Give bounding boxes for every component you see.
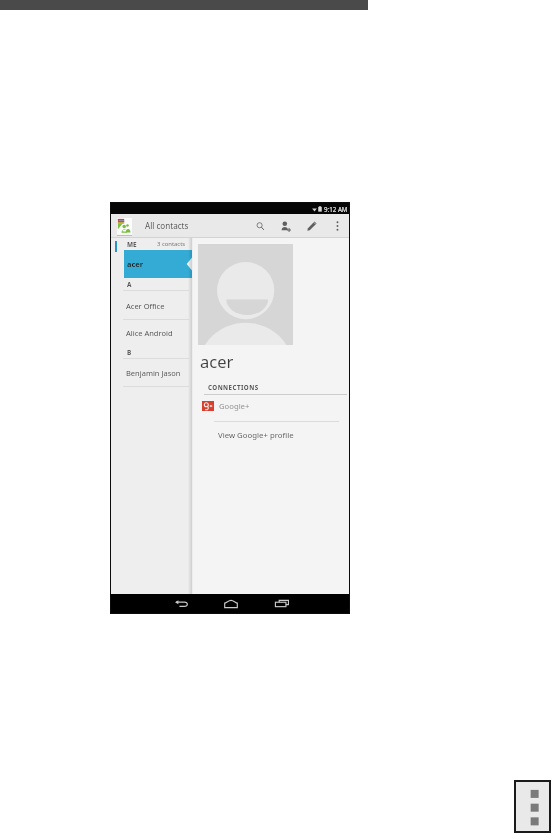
button[interactable]: More options xyxy=(330,216,344,236)
button[interactable]: acer xyxy=(124,250,192,278)
staticText: Benjamin Jason xyxy=(126,368,181,378)
button[interactable]: Google+ xyxy=(192,395,349,416)
button[interactable]: Back xyxy=(166,594,196,613)
button[interactable]: Recents xyxy=(267,594,297,613)
staticText: 9:12 AM xyxy=(324,205,348,213)
staticText: acer xyxy=(200,350,234,372)
staticText: acer xyxy=(127,259,143,269)
staticText: All contacts xyxy=(145,220,189,231)
button[interactable]: Benjamin Jason xyxy=(111,359,192,387)
staticText: CONNECTIONS xyxy=(208,383,259,391)
staticText: ME xyxy=(127,240,137,249)
button[interactable]: View Google+ profile xyxy=(192,420,349,450)
button[interactable]: Search xyxy=(253,216,267,236)
button[interactable]: Acer Office xyxy=(111,291,192,320)
button[interactable]: Add contact xyxy=(279,216,293,236)
button[interactable]: More options xyxy=(516,782,549,831)
button[interactable]: Edit xyxy=(305,216,319,236)
staticText: Acer Office xyxy=(126,301,165,311)
staticText: B xyxy=(127,348,132,357)
staticText: Alice Android xyxy=(126,328,173,338)
button[interactable]: Alice Android xyxy=(111,320,192,346)
staticText: View Google+ profile xyxy=(218,430,294,441)
button[interactable]: Home xyxy=(216,594,246,613)
staticText: Google+ xyxy=(219,401,250,411)
staticText: 3 contacts xyxy=(157,240,186,248)
staticText: A xyxy=(127,280,132,289)
